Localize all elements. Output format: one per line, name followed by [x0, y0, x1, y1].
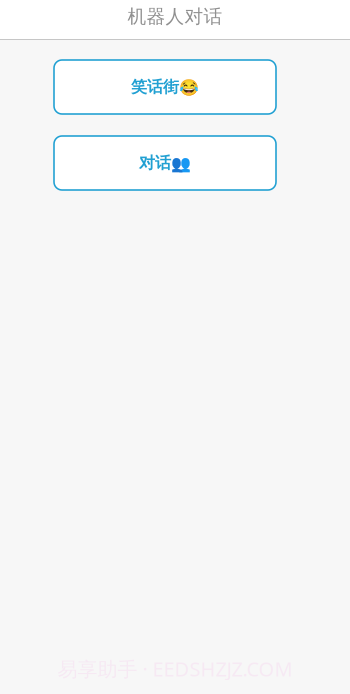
staticText: 对话👥 — [139, 153, 191, 173]
staticText: 易享助手 · EEDSHZJZ.COM — [57, 655, 292, 682]
staticText: 笑话街😂 — [131, 77, 199, 97]
staticText: 机器人对话 — [127, 5, 222, 28]
button[interactable]: 笑话街😂 — [54, 60, 276, 114]
button[interactable]: 对话👥 — [54, 136, 276, 190]
